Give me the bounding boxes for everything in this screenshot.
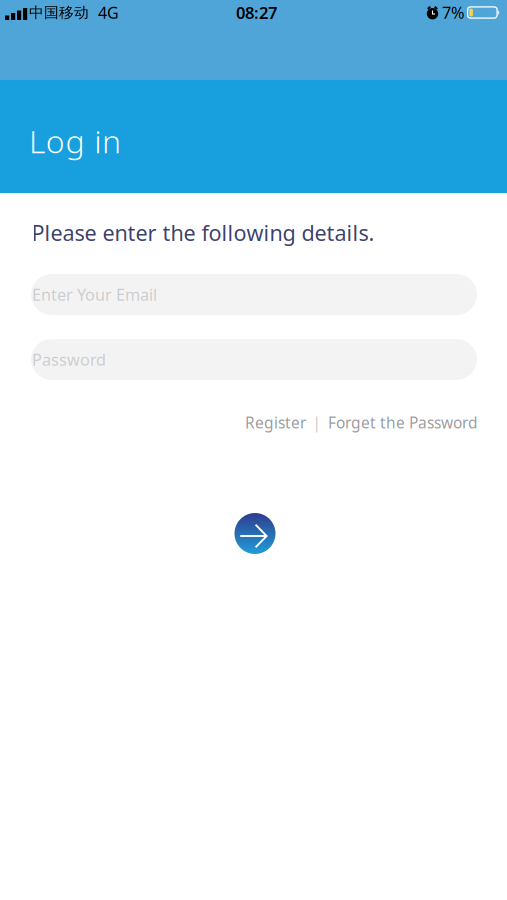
staticText: Forget the Password — [328, 412, 478, 433]
staticText: | — [312, 412, 321, 433]
staticText: 中国移动 — [29, 3, 89, 22]
staticText: Enter Your Email — [32, 283, 157, 306]
staticText: Log in — [29, 119, 121, 163]
staticText: 08:27 — [236, 1, 277, 24]
staticText: Register — [245, 412, 306, 433]
staticText: Password — [32, 348, 106, 371]
staticText: 4G — [98, 2, 119, 23]
staticText: 7% — [442, 1, 465, 24]
staticText: Please enter the following details. — [31, 218, 374, 247]
